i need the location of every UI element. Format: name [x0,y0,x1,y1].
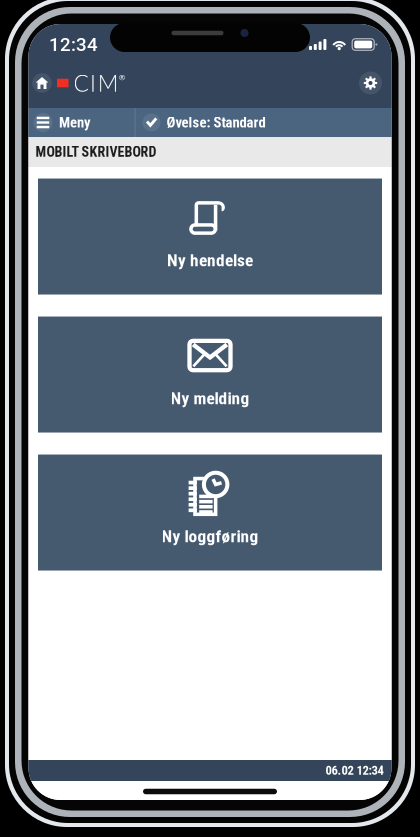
staticText: Ny melding [170,388,249,408]
staticText: CIM [73,69,119,97]
button[interactable]: Settings [356,65,384,101]
staticText: MOBILT SKRIVEBORD [35,144,156,160]
staticText: Ny loggføring [161,526,258,546]
staticText: Øvelse: Standard [166,114,265,131]
staticText: ® [119,73,126,82]
button[interactable]: Øvelse: Standard [135,108,391,137]
button[interactable]: Ny loggføring [38,454,382,570]
button[interactable]: Meny [28,108,134,137]
button[interactable]: Ny melding [38,316,382,432]
button[interactable]: Ny hendelse [38,178,382,294]
button[interactable]: Home [30,65,53,101]
staticText: Ny hendelse [167,250,253,270]
staticText: 12:34 [49,34,98,55]
staticText: 06.02 12:34 [325,763,383,778]
staticText: Meny [59,114,91,131]
